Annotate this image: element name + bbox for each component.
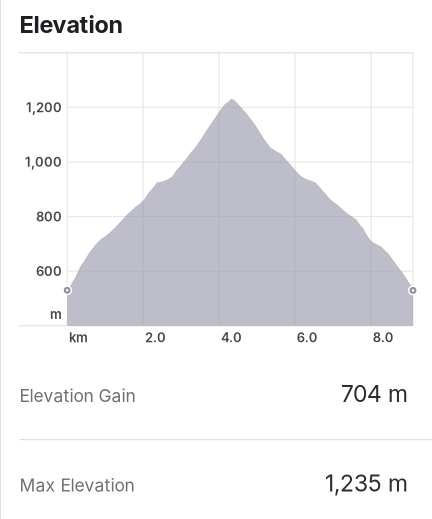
staticText: 4.0 — [221, 330, 242, 345]
staticText: 800 — [36, 209, 62, 225]
staticText: km — [69, 330, 88, 345]
staticText: m — [50, 306, 62, 322]
staticText: Elevation — [19, 10, 122, 39]
button[interactable]: Max Elevation — [19, 473, 408, 497]
staticText: 8.0 — [373, 330, 394, 345]
staticText: 6.0 — [297, 330, 318, 345]
staticText: Elevation Gain — [19, 385, 135, 406]
staticText: 1,000 — [25, 154, 62, 170]
staticText: 1,200 — [26, 100, 62, 115]
staticText: 2.0 — [145, 330, 166, 345]
staticText: 704 m — [341, 380, 408, 407]
staticText: Max Elevation — [19, 475, 134, 496]
button[interactable]: Elevation Gain — [19, 383, 408, 407]
staticText: 600 — [36, 263, 62, 279]
staticText: 1,235 m — [325, 469, 408, 497]
